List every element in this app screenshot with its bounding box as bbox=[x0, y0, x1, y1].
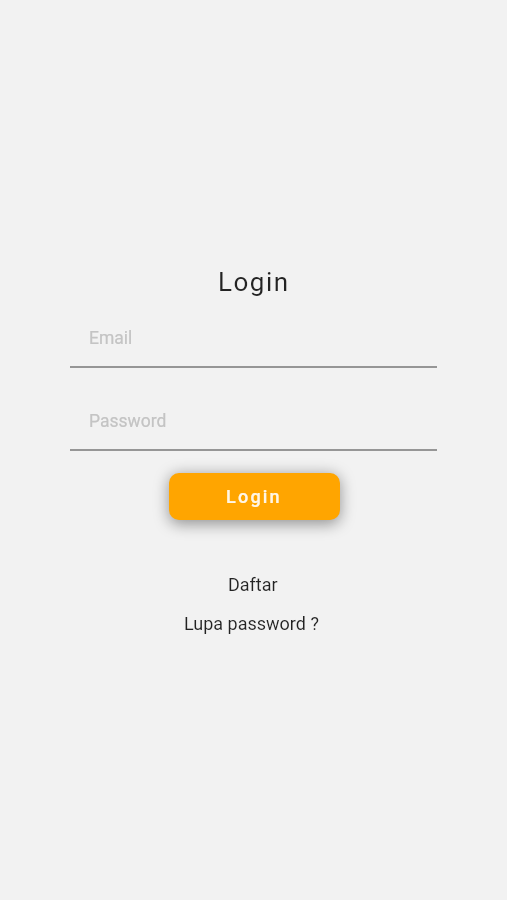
button[interactable]: Daftar bbox=[228, 574, 278, 595]
staticText: Login bbox=[218, 267, 290, 297]
button[interactable]: Lupa password ? bbox=[184, 613, 319, 634]
staticText: Password bbox=[89, 411, 167, 432]
button[interactable]: Login bbox=[169, 473, 340, 520]
staticText: Login bbox=[226, 486, 282, 507]
button[interactable]: Password bbox=[70, 405, 437, 451]
staticText: Email bbox=[89, 328, 133, 349]
button[interactable]: Email bbox=[70, 322, 437, 368]
